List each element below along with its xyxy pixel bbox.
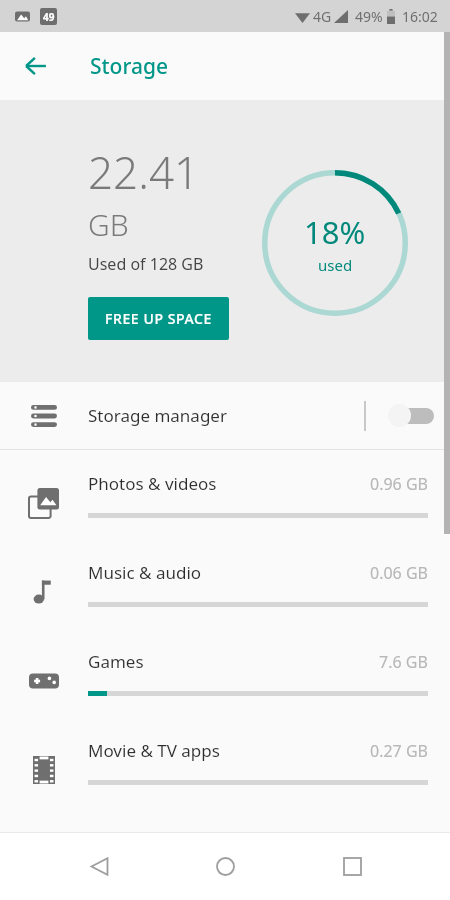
staticText: Music & audio [88, 561, 370, 584]
button[interactable]: Recents [324, 838, 380, 894]
staticText: Used of 128 GB [88, 253, 204, 275]
staticText: 22.41 [88, 142, 200, 202]
staticText: 18% [304, 211, 366, 253]
staticText: FREE UP SPACE [105, 309, 212, 328]
staticText: Photos & videos [88, 472, 370, 495]
staticText: Movie & TV apps [88, 739, 370, 762]
button[interactable]: Movie & TV apps [0, 717, 450, 806]
button[interactable]: Home [197, 838, 253, 894]
staticText: 0.06 GB [370, 562, 428, 584]
staticText: 0.96 GB [370, 473, 428, 495]
staticText: 7.6 GB [379, 651, 428, 673]
button[interactable]: Back [12, 42, 60, 90]
staticText: 4G [313, 7, 332, 26]
staticText: Storage manager [88, 404, 364, 427]
button[interactable]: Storage manager [0, 382, 450, 449]
staticText: GB [88, 204, 129, 245]
button[interactable]: FREE UP SPACE [88, 297, 229, 340]
staticText: 16:02 [402, 7, 438, 26]
staticText: 49 [43, 10, 55, 24]
button[interactable]: Music & audio [0, 539, 450, 628]
staticText: Storage [90, 52, 168, 81]
staticText: 49% [355, 7, 383, 26]
button[interactable]: Back [71, 838, 127, 894]
staticText: used [318, 255, 353, 275]
button[interactable]: Games [0, 628, 450, 717]
staticText: Games [88, 650, 379, 673]
staticText: 0.27 GB [370, 740, 428, 762]
button[interactable]: Photos & videos [0, 450, 450, 539]
